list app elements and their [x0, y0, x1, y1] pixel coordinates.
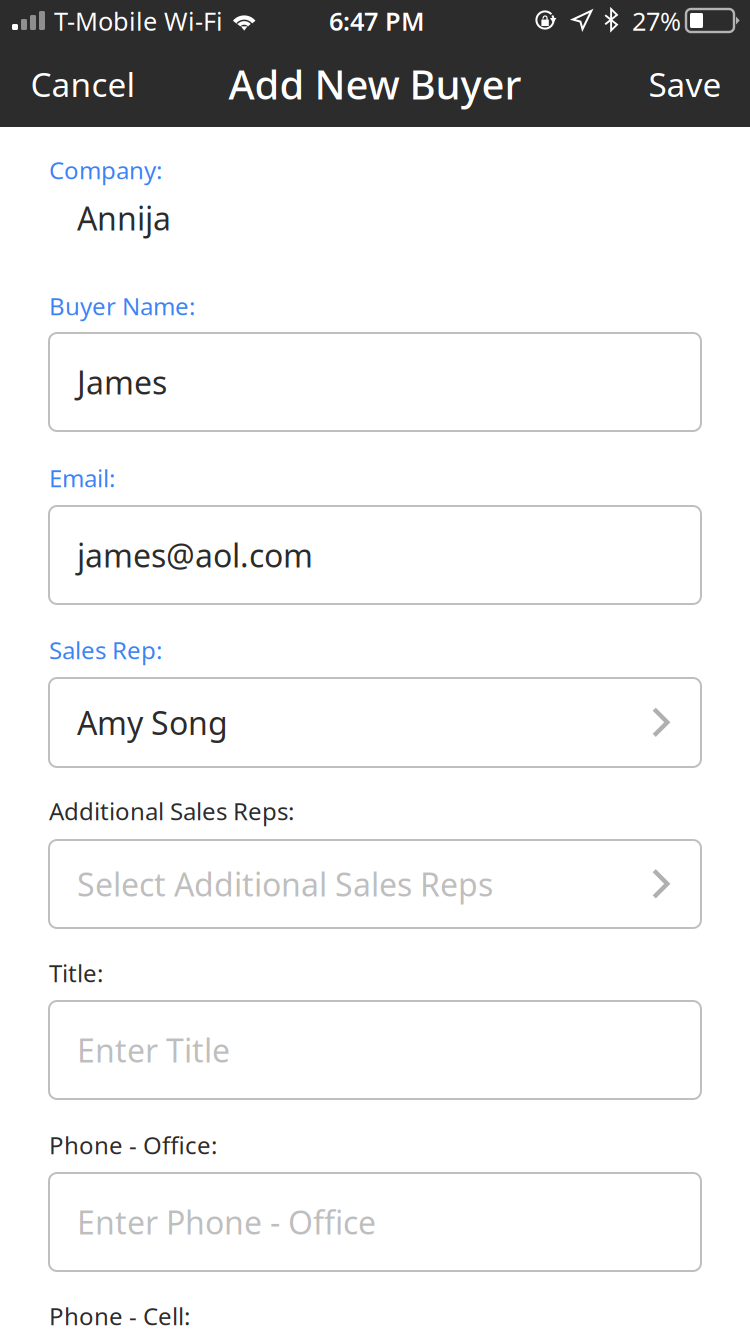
- staticText: Phone - Office:: [49, 1129, 217, 1161]
- staticText: Email:: [49, 462, 115, 494]
- button[interactable]: james@aol.com: [49, 506, 701, 604]
- staticText: Save: [648, 62, 721, 106]
- staticText: Select Additional Sales Reps: [77, 863, 493, 905]
- staticText: james@aol.com: [77, 534, 313, 576]
- staticText: Sales Rep:: [49, 634, 162, 666]
- staticText: 6:47 PM: [329, 4, 425, 38]
- button[interactable]: Enter Phone - Office: [49, 1173, 701, 1271]
- staticText: Company:: [49, 154, 162, 186]
- staticText: Title:: [49, 957, 103, 989]
- button[interactable]: Save: [634, 64, 736, 104]
- staticText: James: [77, 361, 167, 403]
- button[interactable]: Amy Song: [49, 678, 701, 767]
- staticText: T-Mobile Wi-Fi: [54, 4, 223, 38]
- staticText: Phone - Cell:: [49, 1300, 190, 1332]
- button[interactable]: Select Additional Sales Reps: [49, 840, 701, 928]
- staticText: Enter Phone - Office: [77, 1201, 376, 1243]
- button[interactable]: James: [49, 333, 701, 431]
- staticText: 27%: [632, 4, 681, 38]
- staticText: Add New Buyer: [228, 57, 521, 110]
- staticText: Buyer Name:: [49, 290, 195, 322]
- staticText: Amy Song: [77, 701, 228, 744]
- staticText: Annija: [77, 197, 171, 239]
- staticText: Additional Sales Reps:: [49, 795, 294, 827]
- staticText: Cancel: [30, 62, 135, 106]
- button[interactable]: Cancel: [16, 64, 150, 104]
- staticText: Enter Title: [77, 1029, 230, 1071]
- button[interactable]: Enter Title: [49, 1001, 701, 1099]
